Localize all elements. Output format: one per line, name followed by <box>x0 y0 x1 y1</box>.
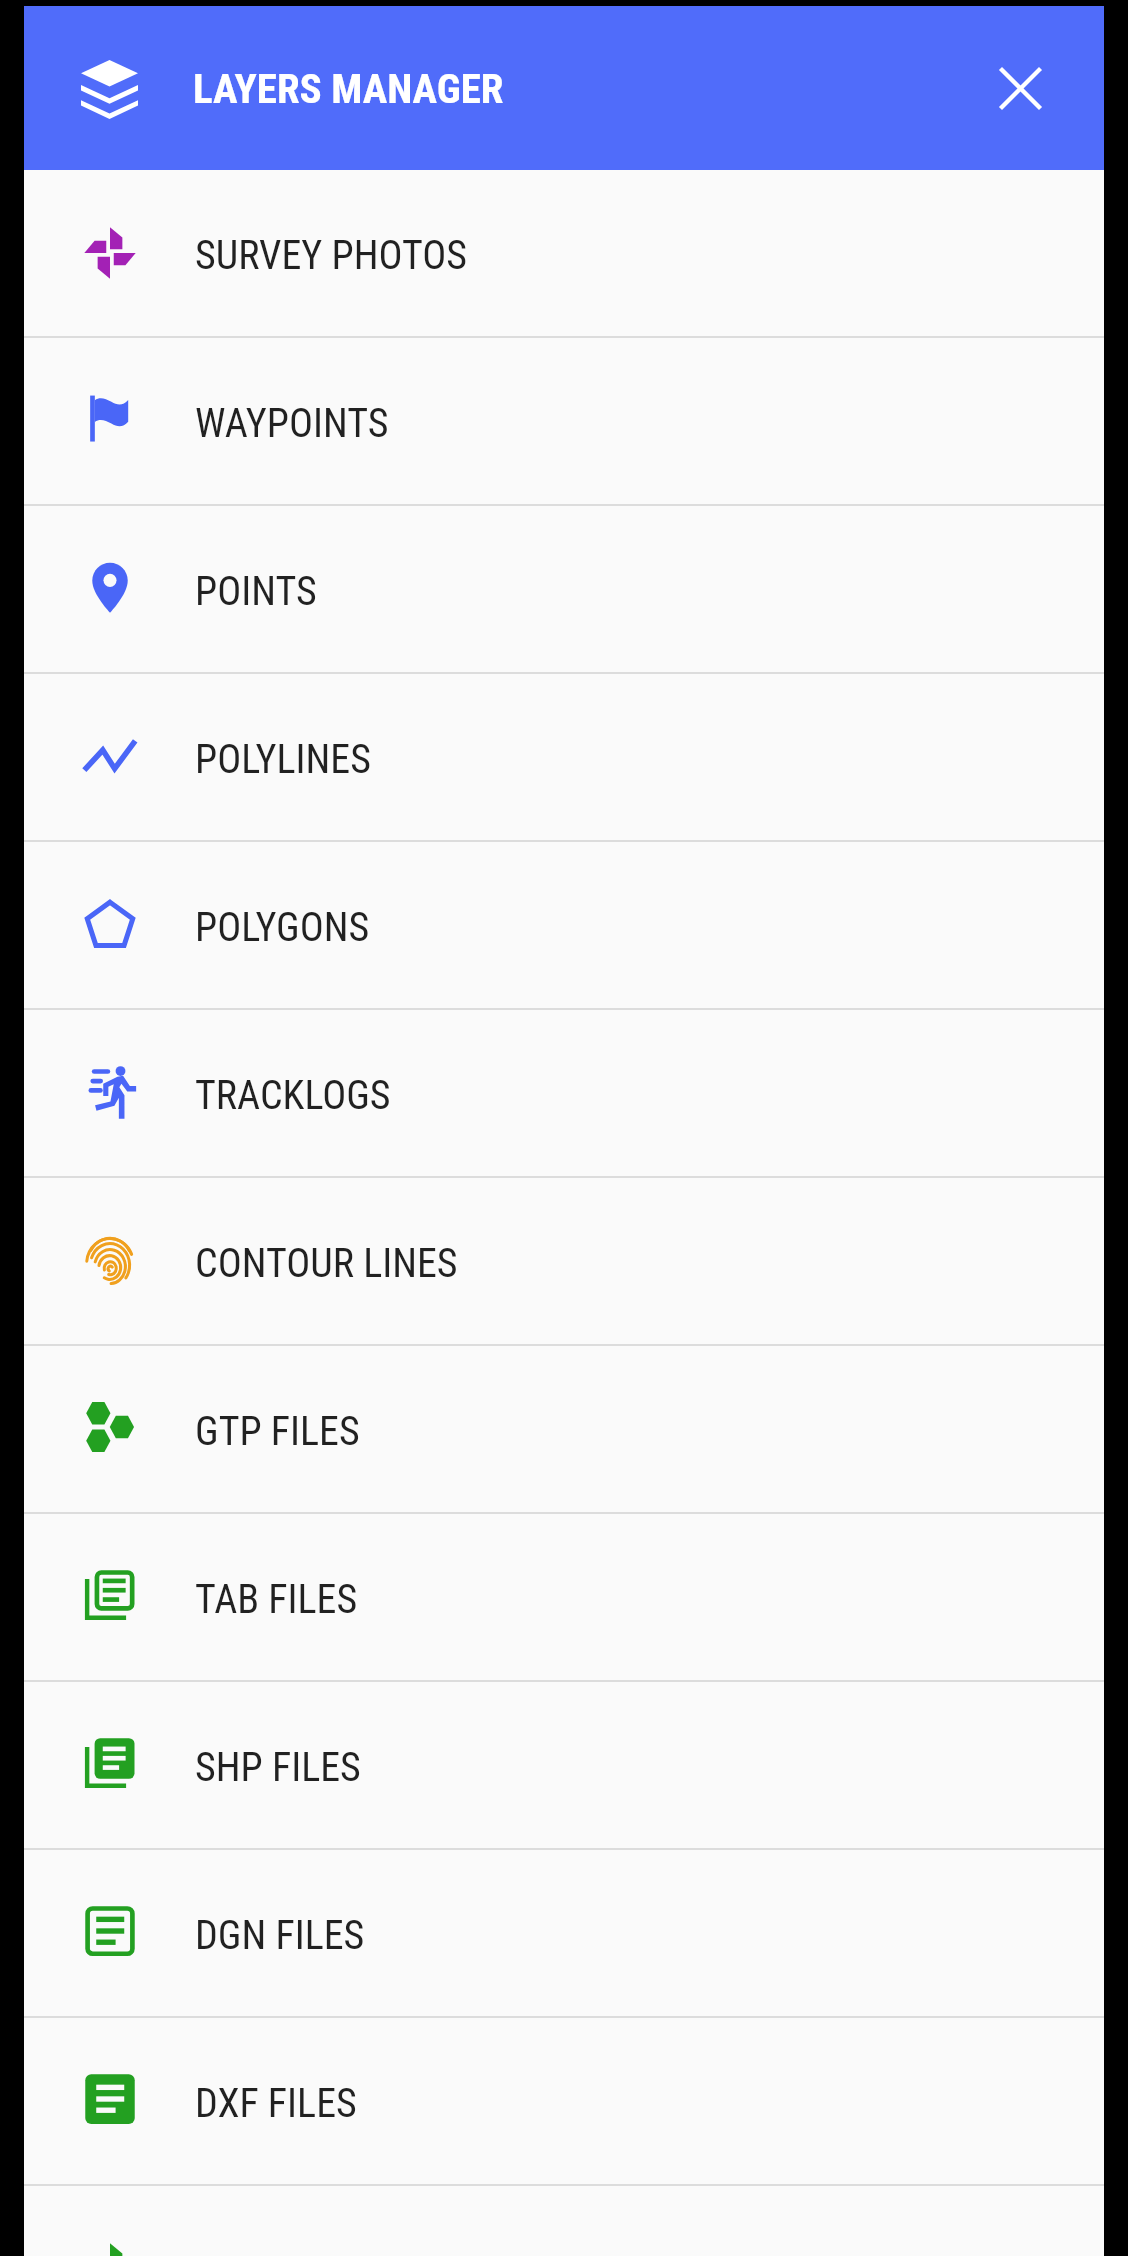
staticText: LAYERS MANAGER <box>193 65 504 113</box>
button[interactable]: WAYPOINTS <box>24 338 1104 506</box>
staticText: DGN FILES <box>195 1912 365 1959</box>
staticText: SURVEY PHOTOS <box>195 232 468 279</box>
staticText: CONTOUR LINES <box>195 1240 458 1287</box>
staticText: WAYPOINTS <box>195 400 389 447</box>
staticText: TRACKLOGS <box>195 1072 391 1119</box>
button[interactable]: TAB FILES <box>24 1514 1104 1682</box>
button[interactable]: SHP FILES <box>24 1682 1104 1850</box>
button[interactable]: GTP FILES <box>24 1346 1104 1514</box>
staticText: TAB FILES <box>195 1576 358 1623</box>
staticText: DXF FILES <box>195 2080 357 2127</box>
staticText: GTP FILES <box>195 1408 360 1455</box>
staticText: POINTS <box>195 568 317 615</box>
button[interactable]: KML FILES <box>24 2186 1104 2256</box>
button[interactable]: DXF FILES <box>24 2018 1104 2186</box>
button[interactable]: CONTOUR LINES <box>24 1178 1104 1346</box>
button[interactable]: DGN FILES <box>24 1850 1104 2018</box>
button[interactable]: TRACKLOGS <box>24 1010 1104 1178</box>
button[interactable]: POINTS <box>24 506 1104 674</box>
button[interactable]: Layers <box>63 42 155 134</box>
staticText: SHP FILES <box>195 1744 361 1791</box>
staticText: POLYLINES <box>195 736 371 783</box>
button[interactable]: SURVEY PHOTOS <box>24 170 1104 338</box>
staticText: POLYGONS <box>195 904 370 951</box>
button[interactable]: POLYGONS <box>24 842 1104 1010</box>
button[interactable]: POLYLINES <box>24 674 1104 842</box>
button[interactable]: Close <box>976 44 1064 132</box>
